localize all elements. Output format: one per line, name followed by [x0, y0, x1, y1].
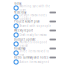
- staticText: Budget update: [14, 38, 36, 41]
- staticText: Three items moved to next: [19, 49, 49, 57]
- staticText: Design review notes updated: [19, 13, 46, 21]
- staticText: Numbers look good overall: [19, 40, 47, 48]
- button[interactable]: Today: [14, 1, 56, 10]
- staticText: Draft ready for review: [19, 33, 46, 37]
- button[interactable]: Weekly report: [14, 28, 56, 37]
- button[interactable]: Retro summary and notes: [14, 55, 56, 64]
- staticText: Roadmap: [14, 47, 26, 50]
- staticText: Today: [14, 2, 21, 5]
- staticText: Yesterday: [14, 11, 26, 14]
- staticText: Action items assigned: [19, 60, 49, 64]
- staticText: Morning sync with the team: [19, 4, 50, 12]
- staticText: Shared with six people: [19, 24, 51, 28]
- button[interactable]: Project kickoff plan: [14, 19, 56, 28]
- staticText: Weekly report: [14, 29, 33, 32]
- button[interactable]: Yesterday: [14, 10, 56, 19]
- staticText: Project kickoff plan: [14, 20, 40, 23]
- button[interactable]: Budget update: [14, 37, 56, 46]
- button[interactable]: Roadmap: [14, 46, 56, 55]
- staticText: Retro summary and notes: [14, 56, 48, 59]
